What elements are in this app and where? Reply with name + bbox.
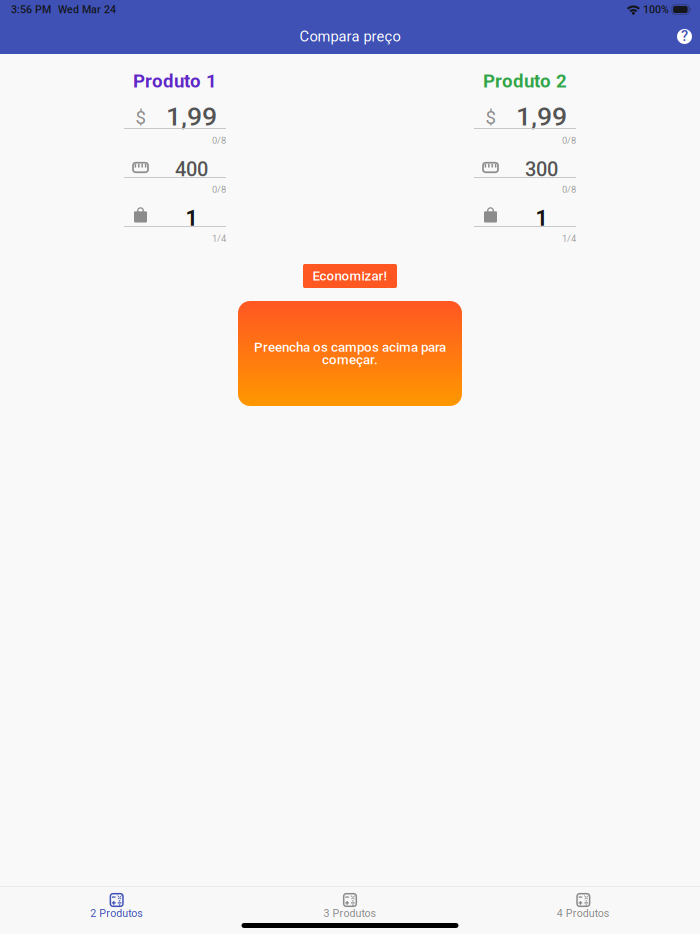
- staticText: 1,99: [166, 101, 217, 132]
- staticText: Produto 2: [483, 70, 567, 92]
- button[interactable]: 4 Produtos: [467, 887, 700, 918]
- staticText: 0/8: [562, 184, 576, 195]
- staticText: 1: [185, 206, 197, 231]
- staticText: ?: [681, 27, 688, 45]
- staticText: Wed Mar 24: [58, 3, 116, 16]
- staticText: 3 Produtos: [323, 907, 376, 919]
- staticText: 1/4: [562, 233, 576, 244]
- staticText: Economizar!: [312, 268, 387, 284]
- button[interactable]: 3 Produtos: [233, 887, 467, 918]
- staticText: $: [135, 107, 145, 128]
- staticText: 4 Produtos: [557, 907, 610, 919]
- staticText: começar.: [322, 352, 378, 368]
- button[interactable]: Help: [669, 19, 700, 54]
- staticText: 3:56 PM: [11, 3, 51, 16]
- staticText: Preencha os campos acima para: [254, 339, 446, 355]
- staticText: 100%: [643, 3, 669, 16]
- staticText: 2 Produtos: [90, 907, 143, 919]
- staticText: 0/8: [562, 135, 576, 146]
- staticText: $: [485, 107, 495, 128]
- staticText: Produto 1: [133, 70, 217, 92]
- button[interactable]: 2 Produtos: [0, 887, 233, 918]
- staticText: 300: [525, 158, 558, 181]
- staticText: 0/8: [212, 184, 226, 195]
- button[interactable]: Economizar!: [303, 264, 397, 288]
- staticText: 1: [535, 206, 547, 231]
- staticText: 400: [175, 158, 208, 181]
- staticText: 0/8: [212, 135, 226, 146]
- staticText: Compara preço: [299, 28, 400, 45]
- staticText: 1/4: [212, 233, 226, 244]
- staticText: 1,99: [516, 101, 567, 132]
